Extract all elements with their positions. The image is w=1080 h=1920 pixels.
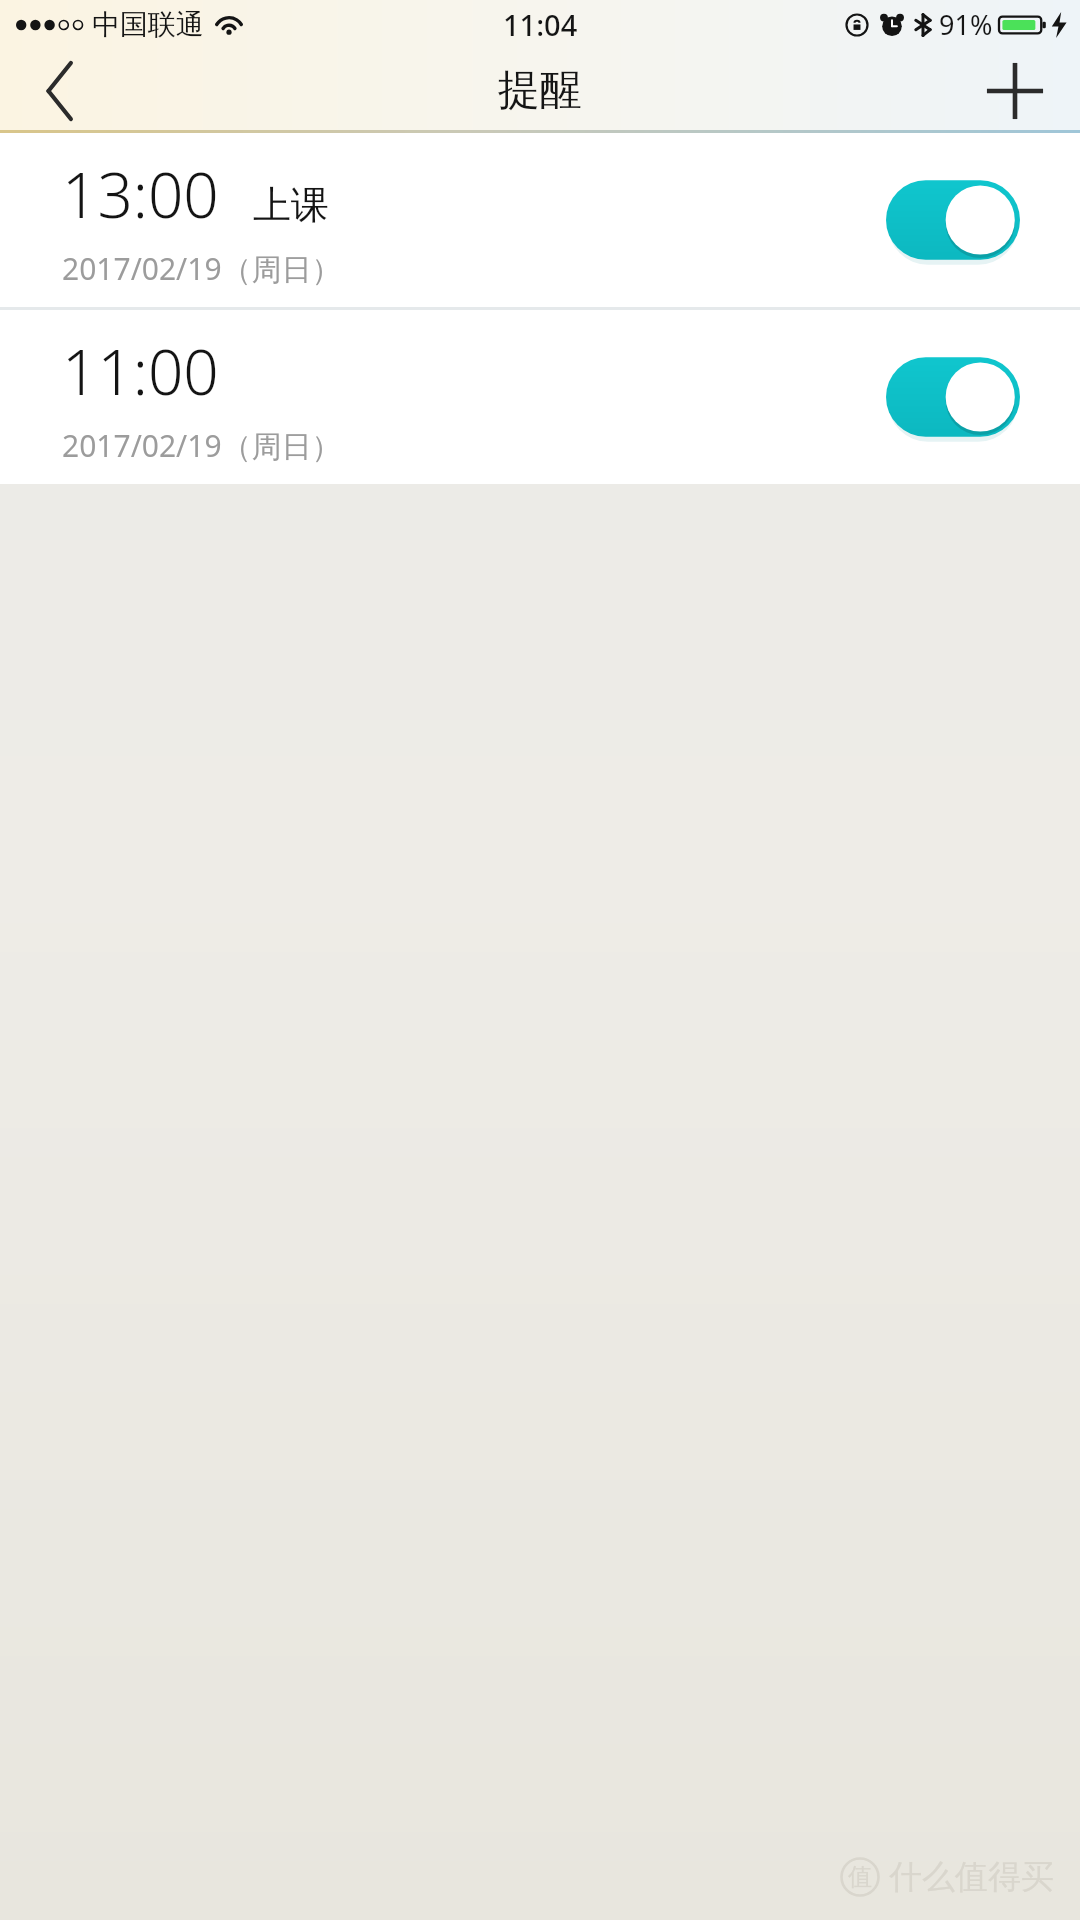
staticText: 提醒: [498, 64, 582, 117]
button[interactable]: Reminder enabled: [886, 179, 1020, 261]
staticText: 什么值得买: [889, 1856, 1054, 1898]
staticText: 11:00: [62, 329, 219, 413]
button[interactable]: 13:00: [0, 133, 1080, 307]
button[interactable]: Add reminder: [950, 48, 1080, 133]
staticText: 2017/02/19（周日）: [62, 248, 342, 289]
button[interactable]: Reminder enabled: [886, 356, 1020, 438]
button[interactable]: Back: [0, 48, 120, 133]
button[interactable]: 11:00: [0, 310, 1080, 484]
staticText: 11:04: [503, 5, 578, 44]
staticText: 上课: [253, 181, 329, 229]
staticText: 91%: [939, 6, 993, 43]
staticText: 值: [848, 1862, 872, 1892]
staticText: 2017/02/19（周日）: [62, 425, 342, 466]
staticText: 13:00: [62, 152, 219, 236]
staticText: 中国联通: [92, 7, 204, 42]
